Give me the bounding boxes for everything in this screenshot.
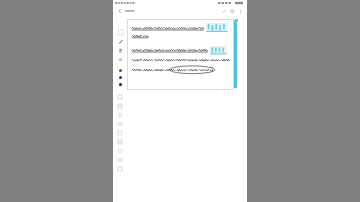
button[interactable]: Tool 7: [113, 146, 127, 155]
button[interactable]: Tool 1: [113, 92, 127, 101]
button[interactable]: Pen: [113, 37, 127, 46]
button[interactable]: Tool 3: [113, 110, 127, 119]
button[interactable]: Red: [113, 67, 127, 74]
button[interactable]: More options: [236, 7, 244, 15]
button[interactable]: Navy: [113, 74, 127, 81]
button[interactable]: Tool 8: [113, 155, 127, 164]
button[interactable]: Back: [116, 7, 124, 15]
button[interactable]: Tool 2: [113, 101, 127, 110]
button[interactable]: Tool 6: [113, 137, 127, 146]
button[interactable]: Highlighter: [113, 46, 127, 55]
button[interactable]: Tool 5: [113, 128, 127, 137]
button[interactable]: Eraser: [113, 55, 127, 64]
button[interactable]: Search: [228, 7, 236, 15]
button[interactable]: Resize handle: [127, 19, 238, 90]
button[interactable]: Tool 4: [113, 119, 127, 128]
button[interactable]: Undo: [220, 7, 228, 15]
button[interactable]: Black: [113, 81, 127, 88]
button[interactable]: Select: [113, 28, 127, 37]
button[interactable]: Tool 9: [113, 164, 127, 173]
